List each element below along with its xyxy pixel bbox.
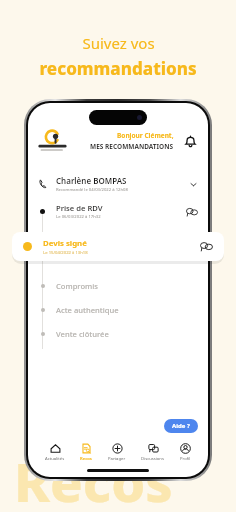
staticText: Charlène BOMPAS (56, 175, 127, 186)
button[interactable]: Notifications (181, 132, 199, 150)
staticText: Vente clôturée (56, 329, 109, 339)
staticText: Recos (14, 444, 173, 512)
button[interactable]: Actualités (43, 441, 67, 463)
staticText: Recommandé le 04/03/2022 à 12h08 (56, 187, 128, 193)
button[interactable]: Vente clôturée (28, 329, 208, 339)
staticText: Suivez vos (82, 33, 155, 53)
staticText: Aide ? (172, 422, 190, 430)
staticText: Partager (108, 456, 126, 462)
button[interactable]: Aide ? (164, 419, 198, 433)
button[interactable]: Discussion (200, 240, 213, 253)
staticText: Acte authentique (56, 305, 119, 315)
staticText: Discussions (141, 456, 164, 462)
staticText: Bonjour Clément, (117, 131, 174, 140)
staticText: Actualités (45, 456, 65, 462)
button[interactable]: Compromis (28, 281, 208, 291)
button[interactable]: Charlène BOMPAS (28, 175, 208, 193)
staticText: Profil (180, 456, 191, 462)
staticText: Le 15/04/2022 à 13h18 (43, 250, 88, 256)
button[interactable]: Profil (177, 441, 193, 463)
staticText: Devis signé (43, 238, 87, 249)
staticText: Prise de RDV (56, 203, 103, 213)
button[interactable]: Discussion (186, 206, 198, 218)
button[interactable]: Recos (78, 441, 94, 463)
staticText: Compromis (56, 281, 98, 291)
staticText: recommandations (39, 57, 197, 80)
staticText: Le 28/03/2022 à 19h04 (56, 241, 101, 247)
staticText: Recos (80, 456, 92, 462)
staticText: Le 06/03/2022 à 17h32 (56, 214, 101, 220)
button[interactable]: Partager (106, 441, 128, 463)
button[interactable]: Prise de RDV (28, 203, 208, 220)
button[interactable]: Acte authentique (28, 305, 208, 315)
button[interactable]: Mandat enregistré (28, 230, 208, 247)
button[interactable]: Discussions (139, 441, 166, 463)
button[interactable]: Devis signé (12, 232, 224, 261)
staticText: MES RECOMMANDATIONS (90, 142, 174, 151)
